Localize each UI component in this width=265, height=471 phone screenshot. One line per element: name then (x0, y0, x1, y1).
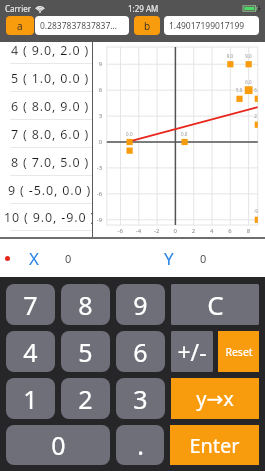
staticText: b (144, 19, 151, 33)
button[interactable]: 8 (61, 284, 110, 325)
button[interactable]: 5 (61, 331, 110, 372)
button[interactable]: 6 ( 8.0, 9.0 ) (0, 92, 92, 120)
staticText: 8 (78, 288, 93, 322)
staticText: 3 (133, 382, 148, 416)
staticText: a (17, 19, 23, 33)
button[interactable]: 9 (116, 284, 165, 325)
staticText: Y (164, 247, 174, 270)
staticText: C (207, 287, 224, 322)
staticText: X (29, 247, 39, 270)
button[interactable]: 5 ( 1.0, 0.0 ) (0, 64, 92, 92)
staticText: y→x (196, 385, 234, 412)
staticText: 2 (78, 382, 93, 416)
staticText: 9 ( -5.0, 0.0 ) (8, 182, 92, 199)
button[interactable]: 4 (6, 331, 55, 372)
button[interactable]: 6 (116, 331, 165, 372)
staticText: 10 ( 9.0, -9.0 ) (4, 209, 92, 226)
button[interactable]: 4 ( 9.0, 2.0 ) (0, 42, 92, 64)
button[interactable]: 10 ( 9.0, -9.0 ) (0, 204, 92, 231)
staticText: 0 (65, 251, 72, 266)
button[interactable]: 9 ( -5.0, 0.0 ) (0, 176, 92, 204)
staticText: 1.49017199017199 (169, 20, 245, 32)
staticText: 0 (200, 251, 207, 266)
staticText: 5 ( 1.0, 0.0 ) (11, 70, 90, 87)
button[interactable]: 2 (61, 378, 110, 419)
staticText: 5 (78, 335, 93, 369)
button[interactable]: 1.49017199017199 (164, 16, 259, 35)
staticText: Reset (225, 345, 253, 359)
staticText: 8 ( 7.0, 5.0 ) (11, 154, 90, 171)
button[interactable]: 8 ( 7.0, 5.0 ) (0, 148, 92, 176)
button[interactable]: 7 (6, 284, 55, 325)
staticText: . (137, 428, 144, 462)
staticText: 9 (133, 288, 148, 322)
button[interactable]: 0.2837837837837… (35, 16, 129, 35)
button[interactable]: Enter (170, 425, 259, 465)
staticText: +/- (177, 336, 207, 367)
staticText: 4 (23, 335, 38, 369)
staticText: 7 (23, 288, 38, 322)
staticText: 4 ( 9.0, 2.0 ) (11, 42, 90, 59)
button[interactable]: b (134, 16, 160, 35)
button[interactable]: 3 (116, 378, 165, 419)
button[interactable]: 0 (6, 425, 110, 465)
button[interactable]: y→x (171, 378, 259, 419)
staticText: Carrier (5, 3, 32, 14)
staticText: 6 (133, 335, 148, 369)
staticText: Enter (189, 432, 240, 459)
staticText: 0.2837837837837… (40, 20, 118, 32)
button[interactable]: 7 ( 8.0, 6.0 ) (0, 120, 92, 148)
button[interactable]: 1 (6, 378, 55, 419)
staticText: 6 ( 8.0, 9.0 ) (11, 98, 90, 115)
button[interactable]: a (6, 16, 34, 35)
button[interactable]: C (171, 284, 259, 325)
staticText: 1:29 AM (128, 3, 159, 14)
button[interactable]: Reset (218, 331, 259, 372)
button[interactable]: +/- (171, 331, 213, 372)
button[interactable]: . (116, 425, 164, 465)
staticText: 7 ( 8.0, 6.0 ) (11, 126, 90, 143)
staticText: 1 (23, 382, 38, 416)
staticText: 0 (51, 428, 66, 462)
